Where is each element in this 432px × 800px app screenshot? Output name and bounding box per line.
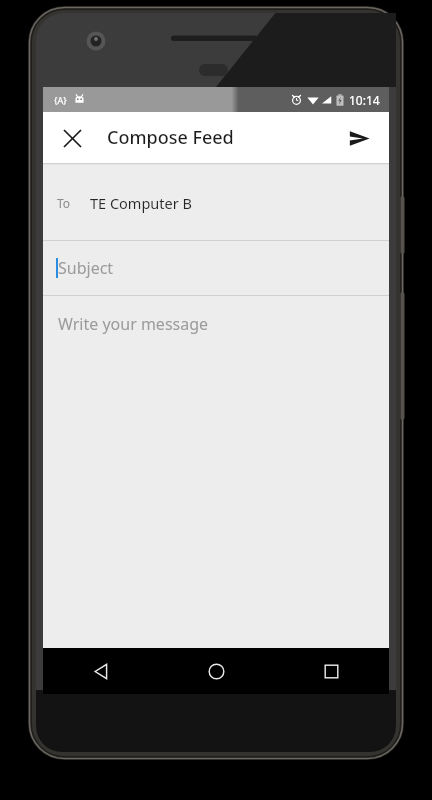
staticText: 10:14 (349, 92, 380, 108)
staticText: To (57, 195, 71, 211)
staticText: Write your message (58, 313, 209, 335)
button[interactable]: Home (159, 648, 274, 694)
staticText: {A} (54, 94, 67, 106)
button[interactable]: To (43, 165, 389, 240)
staticText: Compose Feed (107, 125, 234, 150)
button[interactable]: Back (43, 648, 159, 694)
staticText: Subject (58, 257, 114, 279)
button[interactable]: Subject (43, 241, 389, 295)
staticText: TE Computer B (90, 193, 192, 213)
button[interactable]: Send (338, 117, 380, 159)
button[interactable]: Recents (274, 648, 389, 694)
button[interactable]: Close (51, 117, 93, 159)
button[interactable]: Write your message (43, 296, 389, 648)
